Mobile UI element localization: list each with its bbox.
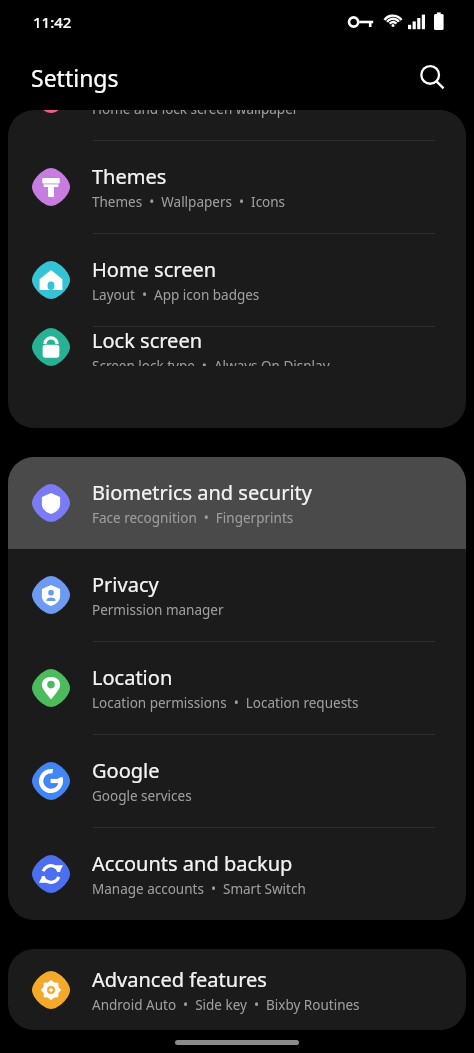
staticText: Google services [92, 787, 192, 805]
staticText: Google [92, 757, 160, 784]
button[interactable]: Location [8, 642, 466, 734]
staticText: Location permissions • Location requests [92, 694, 359, 712]
staticText: Themes • Wallpapers • Icons [92, 193, 286, 211]
staticText: Screen lock type • Always On Display [92, 357, 330, 366]
staticText: Lock screen [92, 327, 203, 354]
staticText: Layout • App icon badges [92, 286, 260, 304]
staticText: Permission manager [92, 601, 224, 619]
staticText: Home screen [92, 256, 217, 283]
button[interactable]: Accounts and backup [8, 828, 466, 920]
staticText: Accounts and backup [92, 850, 293, 877]
button[interactable]: Privacy [8, 549, 466, 641]
staticText: Home and lock screen wallpaper [92, 110, 299, 118]
button[interactable]: Search [410, 55, 454, 99]
button[interactable]: Wallpaper [8, 110, 466, 140]
staticText: 11:42 [33, 12, 72, 32]
staticText: Face recognition • Fingerprints [92, 509, 294, 527]
button[interactable]: Google [8, 735, 466, 827]
button[interactable]: Advanced features [8, 949, 466, 1030]
staticText: Privacy [92, 571, 159, 598]
staticText: Advanced features [92, 966, 267, 993]
staticText: Biometrics and security [92, 479, 312, 506]
button[interactable]: Biometrics and security [8, 457, 466, 549]
button[interactable]: Themes [8, 141, 466, 233]
staticText: Location [92, 664, 173, 691]
staticText: Settings [31, 62, 119, 93]
button[interactable]: Home screen [8, 234, 466, 326]
staticText: Manage accounts • Smart Switch [92, 880, 306, 898]
staticText: Android Auto • Side key • Bixby Routines [92, 996, 360, 1014]
staticText: Themes [92, 163, 167, 190]
button[interactable]: Lock screen [8, 327, 466, 366]
